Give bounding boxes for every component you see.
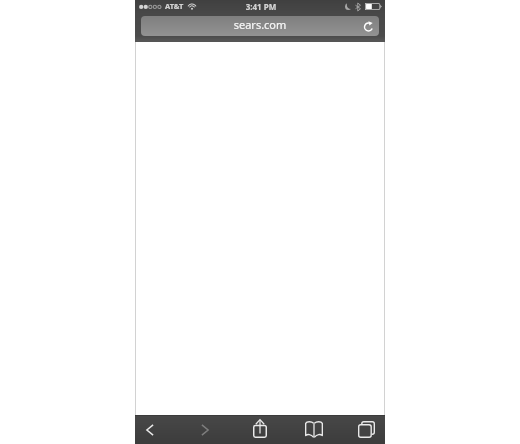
button[interactable]: Share [248,416,272,441]
button[interactable]: Reload [359,16,378,36]
staticText: 3:41 PM [136,1,386,12]
staticText: AT&T [165,1,184,11]
button[interactable]: Back [138,417,162,442]
button[interactable]: Bookmarks [302,417,326,442]
button[interactable]: Tabs [354,417,378,442]
staticText: sears.com [141,17,379,32]
button[interactable]: Forward [193,417,217,442]
button[interactable]: Address and search bar [141,16,379,36]
